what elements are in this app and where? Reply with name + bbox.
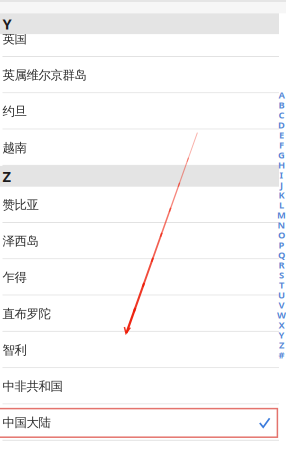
button[interactable]: Jump to section Y (276, 330, 286, 340)
button[interactable]: 泽西岛 (0, 223, 279, 259)
staticText: 中国大陆 (2, 415, 50, 430)
staticText: X (278, 319, 284, 331)
staticText: L (279, 199, 284, 211)
button[interactable]: Jump to section L (276, 200, 286, 210)
button[interactable]: 智利 (0, 332, 279, 368)
button[interactable]: 中非共和国 (0, 368, 279, 404)
staticText: W (277, 309, 286, 321)
staticText: F (279, 139, 284, 151)
staticText: P (278, 239, 284, 251)
staticText: B (278, 99, 284, 111)
button[interactable]: 中国大陆 (0, 404, 279, 441)
button[interactable]: Jump to section Q (276, 250, 286, 260)
button[interactable]: Jump to section B (276, 100, 286, 110)
staticText: 中非共和国 (2, 378, 62, 394)
staticText: T (279, 279, 284, 291)
staticText: J (280, 179, 283, 191)
staticText: 智利 (2, 342, 26, 358)
staticText: 赞比亚 (2, 197, 38, 213)
staticText: A (278, 89, 284, 101)
button[interactable]: Jump to section M (276, 210, 286, 220)
staticText: Z (2, 166, 10, 186)
button[interactable]: Jump to section F (276, 140, 286, 150)
staticText: D (278, 119, 285, 131)
staticText: 英属维尔京群岛 (2, 67, 86, 83)
staticText: M (277, 209, 286, 221)
staticText: 越南 (2, 140, 26, 155)
button[interactable]: 约旦 (0, 93, 279, 130)
button[interactable]: 赞比亚 (0, 187, 279, 223)
button[interactable]: Jump to section X (276, 320, 286, 330)
button[interactable]: 英属维尔京群岛 (0, 57, 279, 93)
staticText: E (279, 129, 284, 141)
button[interactable]: 直布罗陀 (0, 296, 279, 332)
button[interactable]: Jump to section S (276, 270, 286, 280)
button[interactable]: Jump to section # (276, 350, 286, 360)
button[interactable]: Jump to section G (276, 150, 286, 160)
button[interactable]: Jump to section U (276, 290, 286, 300)
staticText: Y (2, 14, 11, 34)
button[interactable]: 英国 (0, 21, 279, 57)
staticText: Y (278, 329, 284, 341)
button[interactable]: Jump to section T (276, 280, 286, 290)
button[interactable]: Jump to section Z (276, 340, 286, 350)
button[interactable]: Jump to section N (276, 220, 286, 230)
staticText: C (278, 109, 284, 121)
staticText: 直布罗陀 (2, 306, 50, 321)
staticText: R (278, 259, 284, 271)
staticText: 泽西岛 (2, 233, 38, 249)
button[interactable]: Jump to section A (276, 90, 286, 100)
button[interactable]: Jump to section V (276, 300, 286, 310)
button[interactable]: Jump to section D (276, 120, 286, 130)
staticText: H (278, 159, 285, 171)
button[interactable]: Jump to section E (276, 130, 286, 140)
staticText: I (279, 169, 283, 181)
staticText: U (278, 289, 285, 301)
staticText: O (278, 229, 285, 241)
button[interactable]: Jump to section O (276, 230, 286, 240)
button[interactable]: Jump to section K (276, 190, 286, 200)
staticText: 英国 (2, 31, 26, 47)
staticText: Z (279, 339, 284, 351)
button[interactable]: Jump to section J (276, 180, 286, 190)
staticText: V (278, 299, 284, 311)
staticText: Q (278, 249, 285, 261)
button[interactable]: Jump to section R (276, 260, 286, 270)
button[interactable]: 乍得 (0, 259, 279, 296)
button[interactable]: Jump to section P (276, 240, 286, 250)
button[interactable]: Jump to section C (276, 110, 286, 120)
staticText: G (278, 149, 285, 161)
button[interactable]: Jump to section H (276, 160, 286, 170)
staticText: N (277, 219, 285, 231)
button[interactable]: Jump to section I (276, 170, 286, 180)
button[interactable]: 越南 (0, 130, 279, 166)
staticText: # (278, 349, 284, 361)
staticText: 约旦 (2, 104, 26, 119)
staticText: K (278, 189, 284, 201)
staticText: 乍得 (2, 270, 26, 285)
staticText: S (279, 269, 284, 281)
button[interactable]: Jump to section W (276, 310, 286, 320)
